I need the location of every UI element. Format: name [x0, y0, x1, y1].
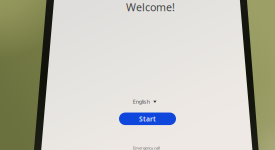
- staticText: Welcome!: [126, 0, 175, 14]
- staticText: Emergency call: [133, 145, 160, 150]
- button[interactable]: English: [131, 96, 158, 107]
- button[interactable]: Emergency call: [132, 144, 161, 150]
- staticText: English: [133, 98, 150, 105]
- button[interactable]: Start: [119, 112, 176, 125]
- staticText: Start: [139, 114, 156, 123]
